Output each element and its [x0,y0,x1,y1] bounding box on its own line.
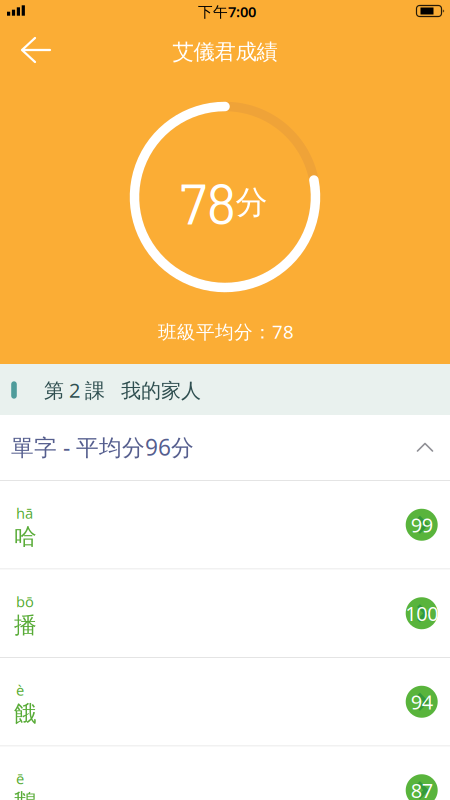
button[interactable]: 單字 - 平均分96分 [0,415,450,480]
staticText: 第 2 課 我的家人 [44,377,201,403]
button[interactable]: è [0,658,450,745]
button[interactable]: hā [0,481,450,568]
staticText: 99 [411,511,433,538]
staticText: 播 [14,611,37,639]
staticText: 班級平均分：78 [158,319,294,344]
button[interactable]: ē [0,746,450,800]
staticText: 78 [179,167,236,236]
staticText: 餓 [14,700,37,728]
staticText: è [16,680,24,700]
staticText: 分 [235,183,267,222]
staticText: 94 [411,688,433,715]
staticText: 下午7:00 [198,2,256,21]
staticText: 鵝 [14,788,37,800]
staticText: 哈 [14,523,37,551]
button[interactable]: Back [5,29,61,71]
staticText: ē [16,769,24,788]
staticText: bō [16,592,34,611]
staticText: 艾儀君成績 [172,39,277,65]
staticText: 87 [411,777,433,800]
button[interactable]: bō [0,569,450,657]
staticText: hā [16,503,33,523]
staticText: 100 [405,600,438,627]
staticText: 單字 - 平均分96分 [11,432,194,462]
